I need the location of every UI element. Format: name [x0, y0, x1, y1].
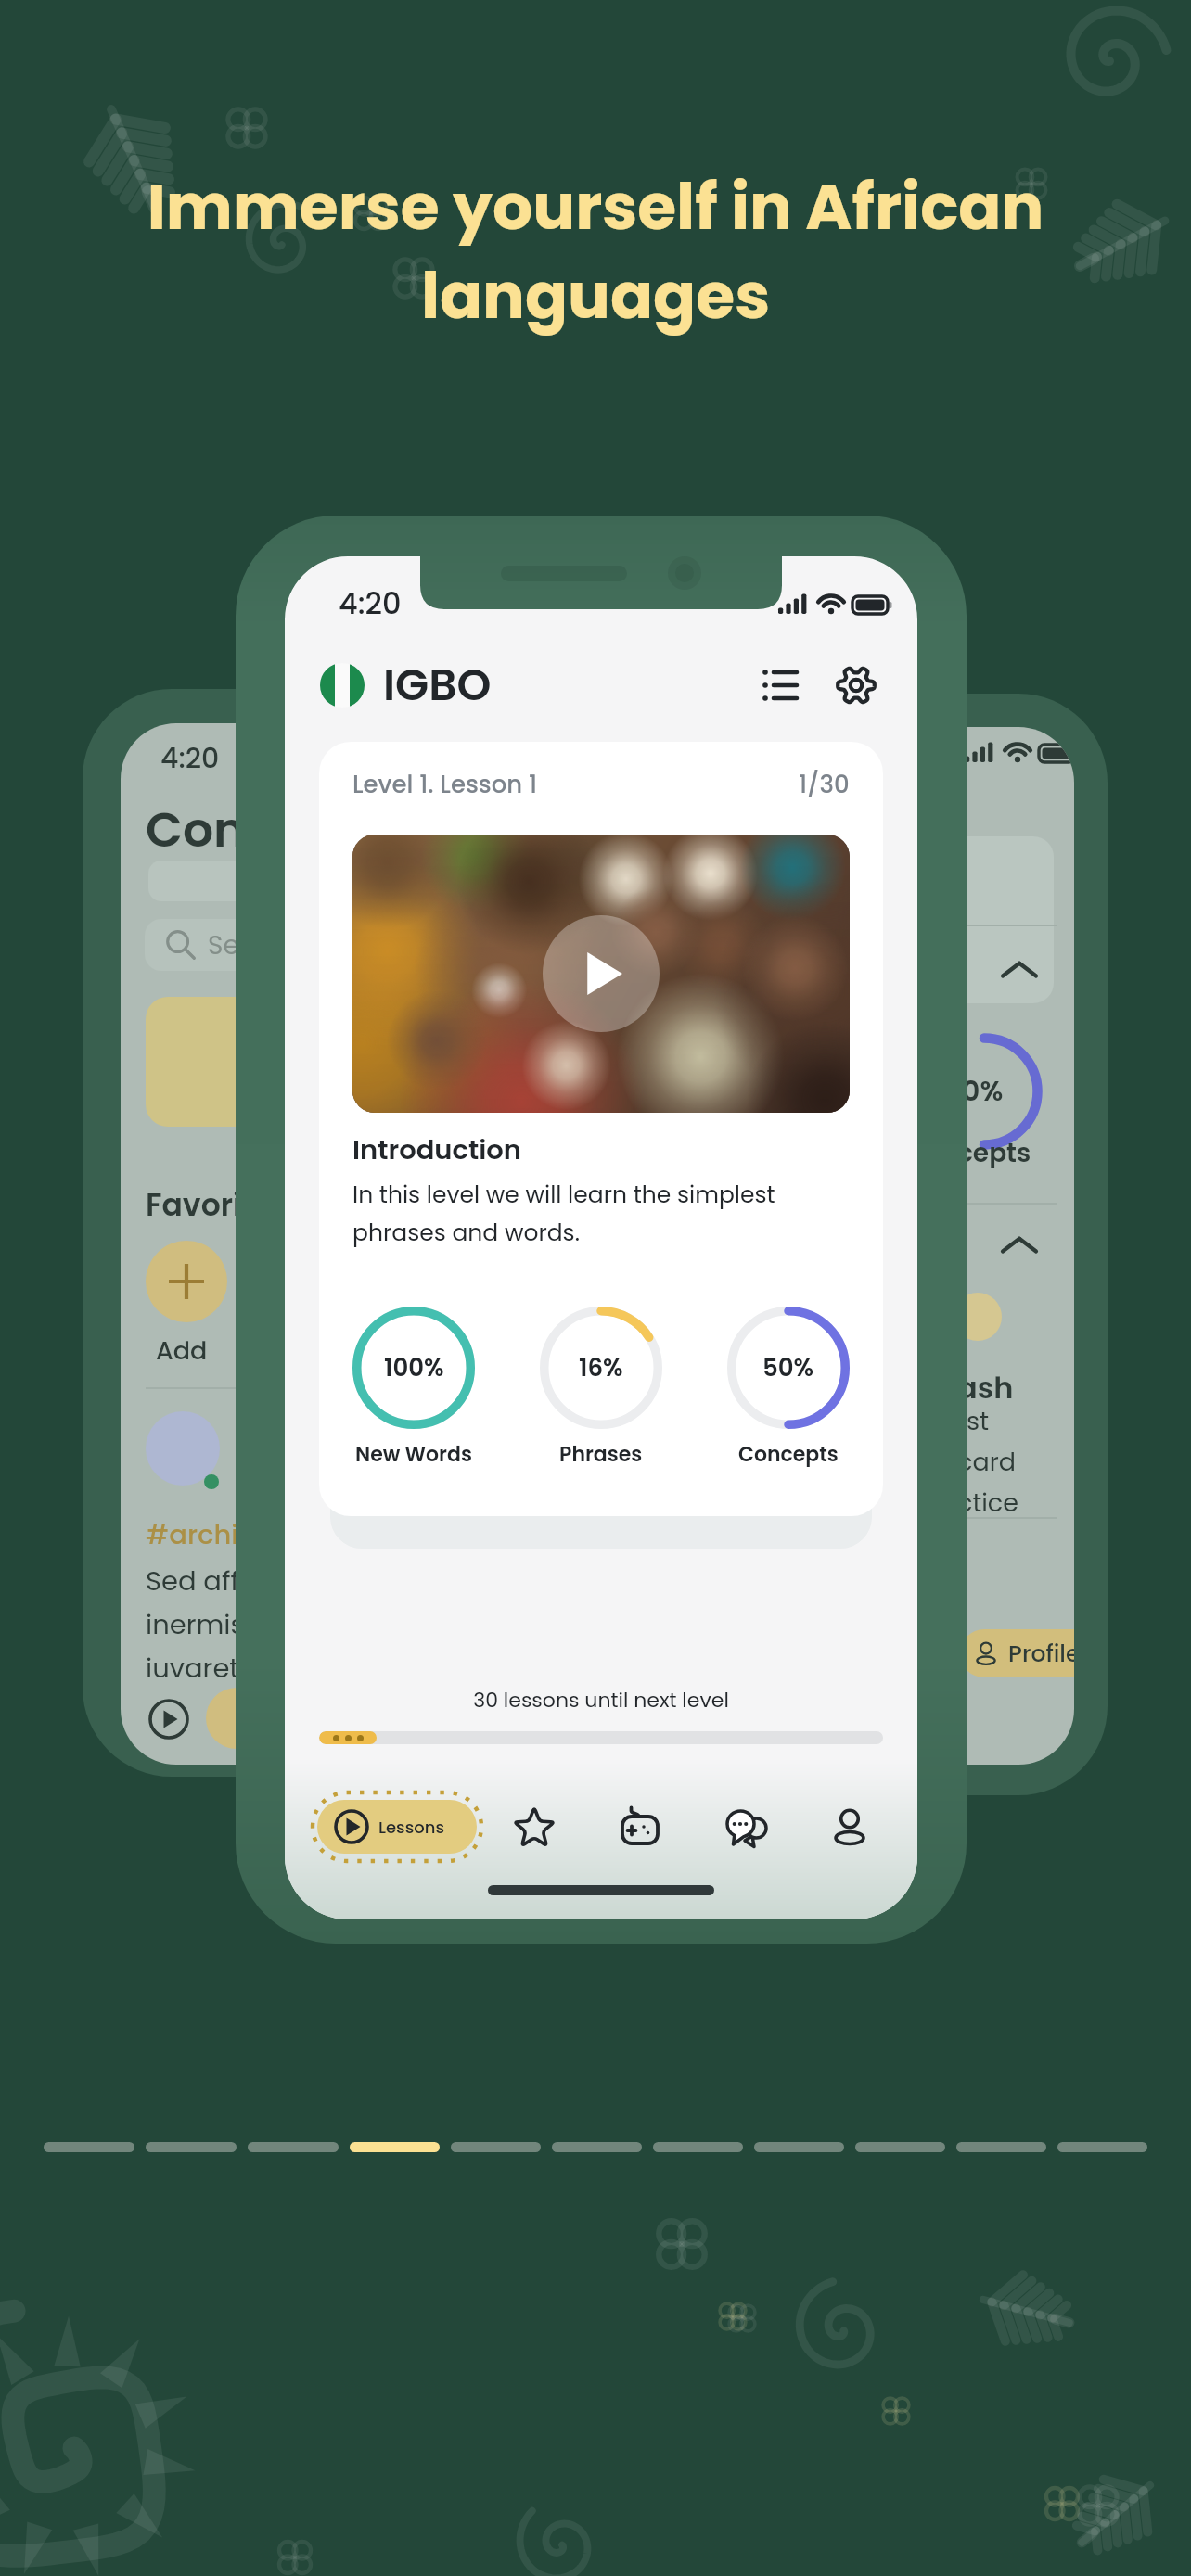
button[interactable] [754, 2142, 844, 2152]
staticText: #architectu [146, 1516, 309, 1554]
staticText: Favorite [146, 1183, 273, 1226]
staticText: 100% [384, 1351, 444, 1384]
staticText: IGBO [383, 655, 492, 716]
staticText: 16% [579, 1351, 623, 1384]
staticText: Profile [1008, 1638, 1074, 1670]
button[interactable] [146, 2142, 237, 2152]
button[interactable] [855, 2142, 945, 2152]
staticText: Lessons [378, 1816, 445, 1839]
staticText: In this level we will learn the simplest… [352, 1179, 850, 1249]
button[interactable] [1057, 2142, 1147, 2152]
staticText: ash [957, 1367, 1014, 1409]
button[interactable] [552, 2142, 642, 2152]
staticText: Add [156, 1333, 208, 1369]
staticText: Sea [208, 927, 257, 963]
button[interactable] [44, 2142, 134, 2152]
staticText: Phrases [559, 1440, 643, 1469]
button[interactable] [248, 2142, 339, 2152]
staticText: 1/30 [799, 768, 850, 801]
button[interactable]: Chat [713, 1793, 780, 1860]
staticText: 4:20 [160, 739, 220, 778]
button[interactable]: Profile [816, 1793, 883, 1860]
button[interactable] [653, 2142, 743, 2152]
button[interactable] [956, 2142, 1046, 2152]
button[interactable]: Play video [352, 835, 850, 1113]
staticText: Introduction [352, 1131, 521, 1169]
button[interactable]: Games [608, 1793, 674, 1860]
staticText: Sed affert inermis. Eu iuvaret vitu [146, 1562, 296, 1688]
staticText: Level 1. Lesson 1 [352, 768, 538, 801]
staticText: rst card ctice [957, 1404, 1018, 1521]
staticText: 50% [762, 1351, 814, 1384]
button[interactable]: Favorites [501, 1793, 568, 1860]
button[interactable] [350, 2142, 440, 2152]
button[interactable]: Lessons [311, 1791, 483, 1863]
button[interactable]: Settings [830, 659, 882, 711]
staticText: 4:20 [339, 582, 402, 624]
staticText: Comm [146, 796, 315, 863]
staticText: Immerse yourself in African languages [83, 163, 1108, 340]
staticText: 30 lessons until next level [285, 1686, 917, 1715]
button[interactable]: List [754, 659, 806, 711]
staticText: cepts [957, 1135, 1031, 1171]
button[interactable] [451, 2142, 541, 2152]
staticText: Concepts [738, 1440, 839, 1469]
staticText: 0% [962, 1072, 1004, 1111]
staticText: New Words [355, 1440, 472, 1469]
button[interactable]: IGBO [320, 655, 492, 716]
